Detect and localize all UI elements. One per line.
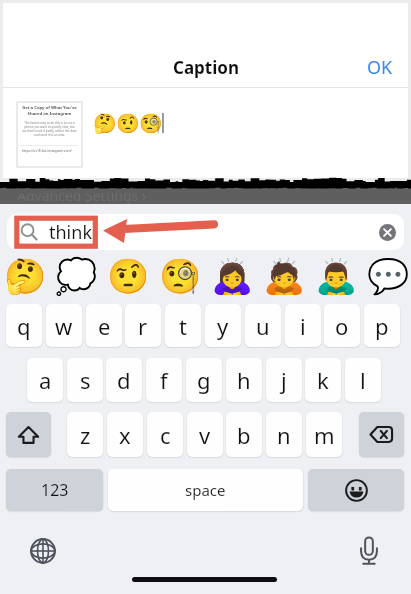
button[interactable]: y bbox=[205, 304, 241, 347]
button[interactable]: Dictation bbox=[357, 536, 381, 565]
staticText: OK bbox=[367, 55, 393, 80]
staticText: n bbox=[277, 420, 291, 450]
staticText: k bbox=[317, 365, 329, 395]
button[interactable]: q bbox=[6, 304, 42, 347]
button[interactable]: u bbox=[245, 304, 281, 347]
staticText: u bbox=[256, 311, 270, 341]
staticText: The fastest way to do this is to use a p… bbox=[22, 121, 77, 137]
staticText: 💬 bbox=[367, 256, 410, 296]
staticText: w bbox=[55, 311, 73, 341]
button[interactable]: 123 bbox=[6, 469, 103, 511]
staticText: j bbox=[281, 365, 287, 395]
staticText: 🤨 bbox=[107, 256, 150, 296]
button[interactable]: x bbox=[107, 412, 143, 457]
button[interactable]: 💬 bbox=[366, 256, 410, 296]
staticText: 🧐 bbox=[139, 112, 162, 134]
button[interactable]: e bbox=[86, 304, 122, 347]
button[interactable]: 🙇‍♂️ bbox=[314, 256, 358, 296]
staticText: p bbox=[375, 311, 389, 341]
button[interactable]: o bbox=[324, 304, 360, 347]
button[interactable]: n bbox=[266, 412, 302, 457]
staticText: s bbox=[80, 365, 91, 395]
staticText: 🤔 bbox=[93, 112, 116, 134]
staticText: 🧐 bbox=[159, 256, 202, 296]
staticText: h bbox=[237, 365, 251, 395]
button[interactable]: f bbox=[146, 358, 182, 402]
button[interactable]: c bbox=[147, 412, 183, 457]
staticText: 🙇‍♀️ bbox=[211, 256, 254, 296]
button[interactable]: Emoji keyboard bbox=[308, 469, 404, 511]
button[interactable]: l bbox=[345, 358, 381, 402]
button[interactable]: Get a Copy of What You've Shared on Inst… bbox=[17, 102, 82, 167]
button[interactable]: 🤔 bbox=[3, 256, 47, 296]
button[interactable]: 🧐 bbox=[158, 256, 202, 296]
staticText: m bbox=[314, 420, 335, 450]
staticText: q bbox=[17, 311, 31, 341]
button[interactable]: 🙇‍♀️ bbox=[210, 256, 254, 296]
staticText: d bbox=[117, 365, 131, 395]
staticText: Advanced Settings › bbox=[17, 186, 147, 205]
button[interactable]: Shift bbox=[6, 412, 51, 457]
button[interactable]: think bbox=[7, 214, 404, 250]
staticText: e bbox=[98, 311, 111, 341]
button[interactable]: p bbox=[364, 304, 400, 347]
button[interactable]: 💭 bbox=[54, 256, 98, 296]
staticText: 💭 bbox=[55, 256, 98, 296]
staticText: a bbox=[39, 365, 52, 395]
button[interactable]: j bbox=[266, 358, 302, 402]
staticText: Caption bbox=[173, 56, 239, 79]
staticText: z bbox=[80, 420, 91, 450]
staticText: l bbox=[360, 365, 366, 395]
staticText: y bbox=[217, 311, 229, 341]
button[interactable]: m bbox=[306, 412, 342, 457]
staticText: 🤔 bbox=[4, 256, 47, 296]
button[interactable]: t bbox=[165, 304, 201, 347]
button[interactable]: w bbox=[46, 304, 82, 347]
staticText: b bbox=[237, 420, 251, 450]
button[interactable]: 🙇 bbox=[262, 256, 306, 296]
staticText: 🙇‍♂️ bbox=[315, 256, 358, 296]
staticText: r bbox=[138, 311, 148, 341]
staticText: c bbox=[160, 420, 171, 450]
button[interactable]: Backspace bbox=[359, 412, 404, 457]
button[interactable]: d bbox=[106, 358, 142, 402]
button[interactable]: space bbox=[108, 469, 303, 511]
button[interactable]: k bbox=[305, 358, 341, 402]
button[interactable]: a bbox=[27, 358, 63, 402]
button[interactable]: Change keyboard language bbox=[30, 538, 56, 564]
button[interactable]: v bbox=[187, 412, 223, 457]
staticText: g bbox=[197, 365, 211, 395]
button[interactable]: s bbox=[67, 358, 103, 402]
staticText: x bbox=[119, 420, 131, 450]
button[interactable]: Clear search text bbox=[379, 224, 396, 241]
staticText: o bbox=[335, 311, 349, 341]
button[interactable]: z bbox=[67, 412, 103, 457]
staticText: 🤨 bbox=[116, 112, 139, 134]
staticText: Get a Copy of What You've Shared on Inst… bbox=[20, 105, 79, 117]
button[interactable]: 🤨 bbox=[106, 256, 150, 296]
staticText: t bbox=[179, 311, 187, 341]
staticText: f bbox=[160, 365, 168, 395]
button[interactable]: i bbox=[285, 304, 321, 347]
staticText: i bbox=[300, 311, 306, 341]
staticText: 123 bbox=[41, 479, 69, 501]
button[interactable]: r bbox=[125, 304, 161, 347]
staticText: think bbox=[49, 220, 93, 245]
button[interactable]: g bbox=[186, 358, 222, 402]
button[interactable]: h bbox=[226, 358, 262, 402]
button[interactable]: OK bbox=[359, 49, 401, 86]
button[interactable]: b bbox=[226, 412, 262, 457]
staticText: 🙇 bbox=[263, 256, 306, 296]
staticText: space bbox=[185, 480, 226, 500]
staticText: v bbox=[199, 420, 211, 450]
staticText: https://us18.list-instagram.com/ bbox=[22, 148, 72, 152]
